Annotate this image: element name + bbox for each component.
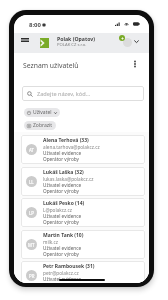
- staticText: Zadejte název, kód...: [37, 90, 91, 98]
- staticText: MT: [28, 242, 35, 248]
- staticText: Uživatel evidence: [43, 276, 82, 282]
- staticText: Uživatel evidence: [43, 182, 82, 188]
- button[interactable]: Zadejte název, kód...: [22, 86, 144, 101]
- button[interactable]: More options: [128, 57, 142, 71]
- staticText: alena.tarhova@polakcz.cz: [43, 144, 100, 150]
- button[interactable]: Menu: [19, 34, 31, 46]
- staticText: Alena Terhová (33): [43, 137, 89, 144]
- button[interactable]: AT: [21, 135, 145, 164]
- button[interactable]: Uživatel: [24, 108, 60, 117]
- staticText: lukas.laska@polakcz.cz: [43, 176, 94, 182]
- button[interactable]: MT: [21, 230, 145, 259]
- staticText: Uživatel: [33, 109, 52, 116]
- staticText: Uživatel evidence: [43, 245, 82, 251]
- staticText: Zobrazit: [33, 122, 53, 129]
- staticText: AT: [29, 147, 34, 153]
- staticText: Lukáš Laška (32): [43, 169, 84, 176]
- staticText: petr@polakcz.cz: [43, 270, 79, 276]
- staticText: milk.cz: [43, 239, 59, 245]
- staticText: Polak (Opatov): [57, 35, 96, 42]
- staticText: PR: [29, 273, 35, 279]
- staticText: Operátor výroby: [43, 219, 79, 225]
- staticText: Operátor výroby: [43, 188, 79, 194]
- button[interactable]: LL: [21, 167, 145, 196]
- button[interactable]: LP: [21, 198, 145, 227]
- button[interactable]: Switch account: [131, 36, 142, 47]
- staticText: Uživatel evidence: [43, 213, 82, 219]
- staticText: L@polakcz.cz: [43, 207, 72, 213]
- staticText: Uživatel evidence: [43, 150, 82, 156]
- staticText: LP: [29, 210, 34, 216]
- button[interactable]: Account: [118, 34, 136, 48]
- staticText: Martin Tank (10): [43, 232, 84, 239]
- staticText: POLAK CZ s.r.o.: [57, 42, 87, 48]
- staticText: Operátor výroby: [43, 156, 79, 162]
- staticText: 8:00: [29, 21, 41, 29]
- staticText: LL: [29, 179, 34, 185]
- staticText: Lukáš Pesko (14): [43, 200, 85, 207]
- staticText: Petr Rambousek (31): [43, 263, 95, 270]
- staticText: Seznam uživatelů: [23, 61, 79, 70]
- staticText: Operátor výroby: [43, 251, 79, 257]
- button[interactable]: PR: [21, 261, 145, 283]
- button[interactable]: Zobrazit: [24, 121, 56, 130]
